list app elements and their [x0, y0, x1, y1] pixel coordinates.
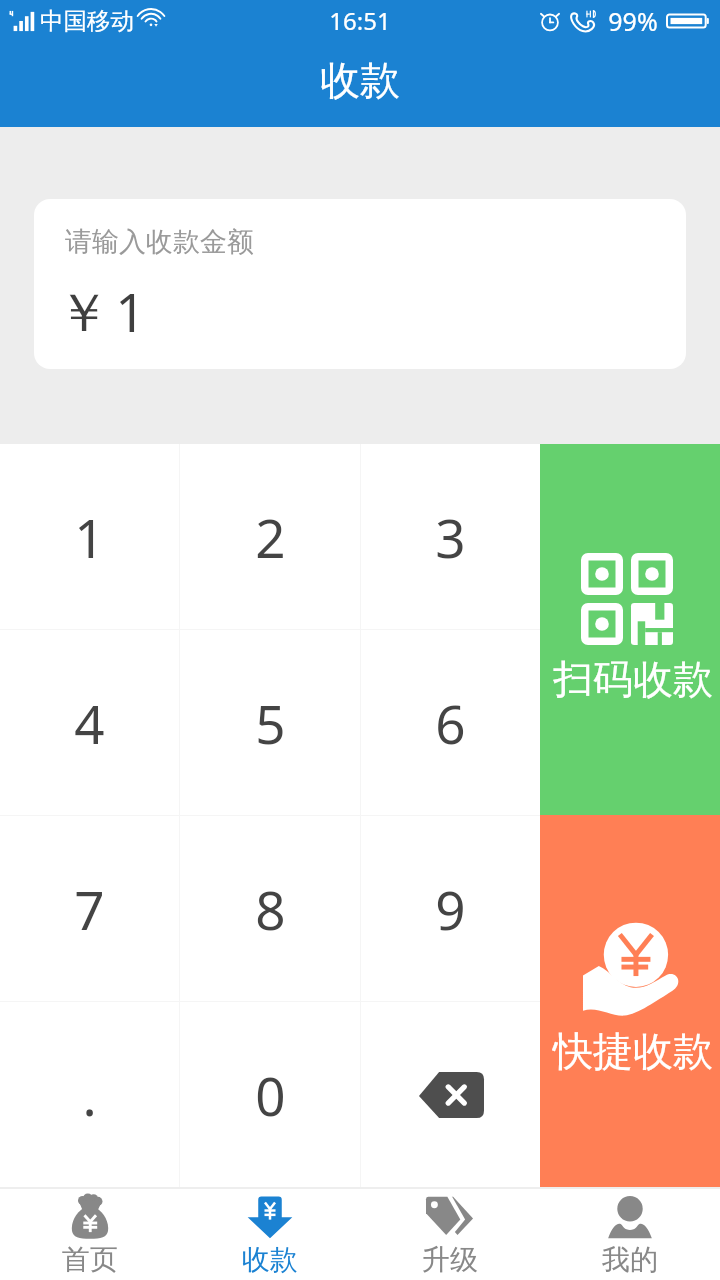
staticText: 2 — [255, 501, 286, 573]
staticText: 1 — [115, 275, 146, 347]
staticText: 1 — [74, 501, 105, 573]
button[interactable]: 6 — [361, 630, 540, 815]
button[interactable]: 收款 — [180, 1189, 360, 1280]
staticText: 我的 — [602, 1242, 658, 1277]
button[interactable]: 4 — [0, 630, 179, 815]
staticText: 快捷收款 — [553, 1026, 713, 1076]
staticText: 5 — [255, 687, 286, 759]
staticText: 首页 — [62, 1242, 118, 1277]
staticText: 4 — [74, 687, 105, 759]
staticText: 扫码收款 — [553, 654, 713, 704]
staticText: 7 — [74, 873, 105, 945]
button[interactable]: 首页 — [0, 1189, 180, 1280]
button[interactable]: 升级 — [360, 1189, 540, 1280]
staticText: 0 — [255, 1059, 286, 1131]
button[interactable]: 快捷收款 — [540, 815, 720, 1187]
button[interactable]: 3 — [361, 444, 540, 629]
button[interactable]: . — [0, 1002, 179, 1187]
staticText: 16:51 — [329, 4, 391, 37]
button[interactable]: 8 — [180, 816, 360, 1001]
staticText: 3 — [435, 501, 466, 573]
staticText: 99% — [608, 4, 658, 38]
staticText: 收款 — [242, 1242, 298, 1277]
button[interactable]: 7 — [0, 816, 179, 1001]
staticText: 8 — [255, 873, 286, 945]
staticText: 收款 — [320, 55, 400, 105]
button[interactable]: 2 — [180, 444, 360, 629]
staticText: 请输入收款金额 — [65, 225, 254, 259]
button[interactable]: 9 — [361, 816, 540, 1001]
button[interactable]: 扫码收款 — [540, 444, 720, 815]
staticText: 升级 — [422, 1242, 478, 1277]
button[interactable]: 1 — [0, 444, 179, 629]
staticText: 中国移动 — [40, 6, 134, 36]
button[interactable]: Delete — [361, 1002, 540, 1187]
staticText: ￥ — [57, 280, 110, 347]
staticText: 6 — [435, 687, 466, 759]
button[interactable]: 请输入收款金额 — [34, 199, 686, 369]
button[interactable]: 5 — [180, 630, 360, 815]
staticText: 9 — [435, 873, 466, 945]
button[interactable]: 我的 — [540, 1189, 720, 1280]
staticText: . — [82, 1059, 97, 1131]
button[interactable]: 0 — [180, 1002, 360, 1187]
